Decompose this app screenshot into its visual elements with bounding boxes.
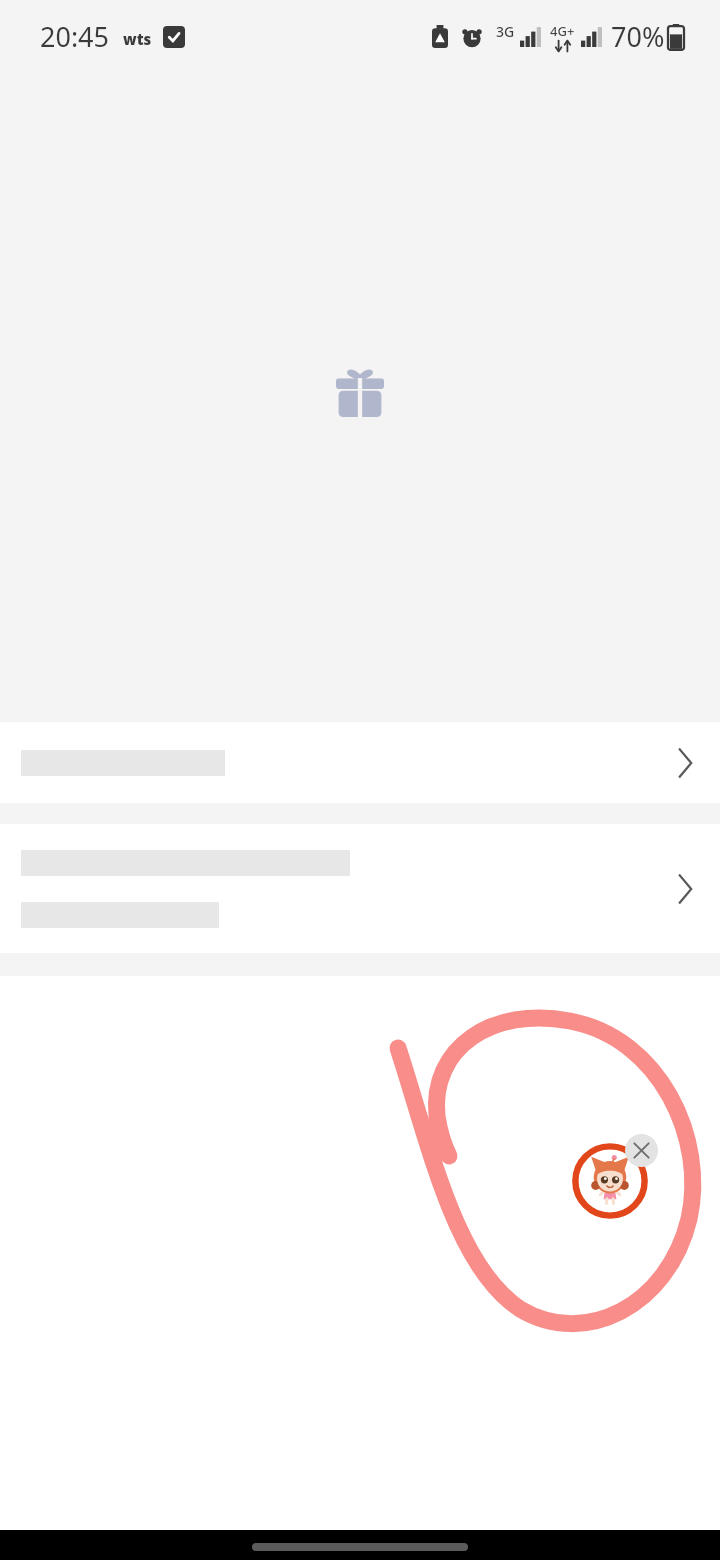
button[interactable]: Close <box>625 1134 658 1167</box>
button[interactable]: Assistant avatar <box>567 1138 653 1224</box>
button[interactable] <box>0 824 720 953</box>
staticText: wts <box>123 29 152 49</box>
button[interactable] <box>0 722 720 803</box>
staticText: 3G <box>496 22 515 41</box>
staticText: 20:45 <box>40 18 110 55</box>
staticText: 4G+ <box>550 22 575 40</box>
button[interactable]: Home <box>252 1543 468 1551</box>
staticText: 70% <box>611 18 665 55</box>
